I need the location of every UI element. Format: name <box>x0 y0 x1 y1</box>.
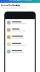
button[interactable]: Start learning for free today <box>0 0 40 3</box>
button[interactable] <box>5 26 35 33</box>
button[interactable] <box>5 19 35 26</box>
staticText: Thousands of online courses for you <box>1 7 27 9</box>
button[interactable] <box>5 48 35 55</box>
staticText: Start learning for free today <box>8 0 31 1</box>
button[interactable] <box>5 33 35 41</box>
staticText: Improve Your Knowledge <box>1 4 20 6</box>
button[interactable] <box>5 41 35 48</box>
